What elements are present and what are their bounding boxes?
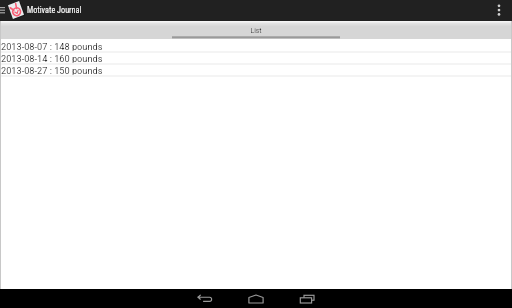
staticText: List (250, 27, 262, 35)
staticText: 2013-08-14 : 160 pounds (1, 53, 103, 63)
button[interactable]: 2013-08-27 : 150 pounds (0, 65, 512, 77)
button[interactable]: List (172, 21, 340, 39)
staticText: 2013-08-27 : 150 pounds (1, 65, 103, 75)
button[interactable]: Recent apps (281, 289, 332, 308)
staticText: Motivate Journal (27, 5, 82, 15)
button[interactable]: App icon (0, 0, 24, 21)
button[interactable]: More options (486, 0, 512, 21)
button[interactable]: 2013-08-07 : 148 pounds (0, 41, 512, 53)
button[interactable]: 2013-08-14 : 160 pounds (0, 53, 512, 65)
button[interactable]: Back (179, 289, 230, 308)
staticText: 2013-08-07 : 148 pounds (1, 41, 103, 51)
button[interactable]: Home (230, 289, 281, 308)
